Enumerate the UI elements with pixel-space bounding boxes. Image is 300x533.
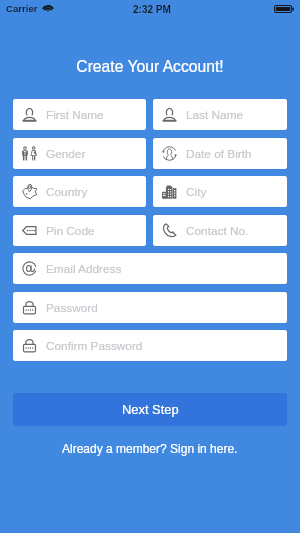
- staticText: Carrier: [6, 3, 38, 14]
- staticText: Date of Birth: [186, 147, 252, 160]
- button[interactable]: Gender: [13, 138, 146, 169]
- staticText: Gender: [46, 147, 86, 160]
- staticText: 2:32 PM: [133, 4, 171, 15]
- button[interactable]: Next Step: [13, 393, 287, 426]
- staticText: Contact No.: [186, 224, 249, 237]
- other: Battery full: [274, 5, 294, 13]
- staticText: First Name: [46, 108, 104, 121]
- button[interactable]: Email Address: [13, 253, 287, 284]
- staticText: Country: [46, 185, 88, 198]
- button[interactable]: Contact No.: [153, 215, 287, 246]
- staticText: Password: [46, 301, 98, 314]
- button[interactable]: Password: [13, 292, 287, 323]
- staticText: Pin Code: [46, 224, 95, 237]
- staticText: Confirm Password: [46, 339, 143, 352]
- staticText: Already a member? Sign in here.: [62, 442, 238, 455]
- other: Wi-Fi signal: [42, 4, 54, 12]
- staticText: Last Name: [186, 108, 244, 121]
- staticText: Email Address: [46, 262, 122, 275]
- button[interactable]: City: [153, 176, 287, 207]
- button[interactable]: Country: [13, 176, 146, 207]
- button[interactable]: Already a member? Sign in here.: [13, 442, 287, 455]
- button[interactable]: Confirm Password: [13, 330, 287, 361]
- staticText: City: [186, 185, 207, 198]
- staticText: Create Your Account!: [0, 58, 300, 76]
- staticText: Next Step: [122, 402, 179, 416]
- button[interactable]: First Name: [13, 99, 146, 130]
- button[interactable]: Last Name: [153, 99, 287, 130]
- button[interactable]: Pin Code: [13, 215, 146, 246]
- button[interactable]: Date of Birth: [153, 138, 287, 169]
